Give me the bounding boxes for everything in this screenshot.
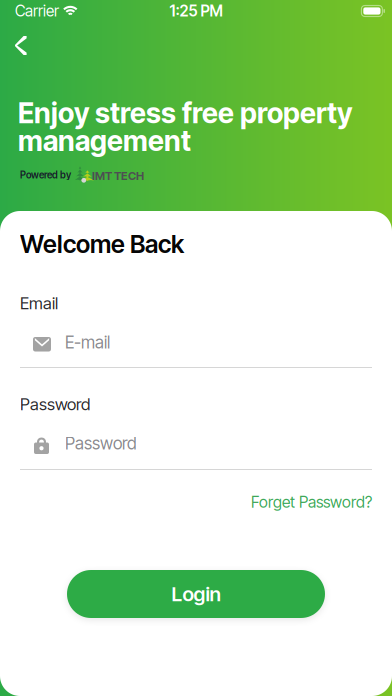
staticText: Carrier (15, 2, 59, 20)
staticText: IMT TECH (92, 169, 144, 183)
staticText: 1:25 PM (169, 2, 222, 20)
staticText: Email (20, 293, 58, 313)
staticText: Powered by (20, 169, 71, 181)
staticText: Login (171, 582, 220, 606)
button[interactable]: Forget Password? (232, 491, 372, 513)
button[interactable]: Back (4, 25, 38, 66)
button[interactable]: Login (67, 570, 325, 618)
staticText: Forget Password? (251, 492, 372, 511)
staticText: Password (65, 433, 137, 454)
staticText: Enjoy stress free property management (18, 96, 352, 158)
staticText: Welcome Back (20, 229, 184, 259)
staticText: E-mail (65, 332, 110, 353)
staticText: Password (20, 394, 90, 414)
